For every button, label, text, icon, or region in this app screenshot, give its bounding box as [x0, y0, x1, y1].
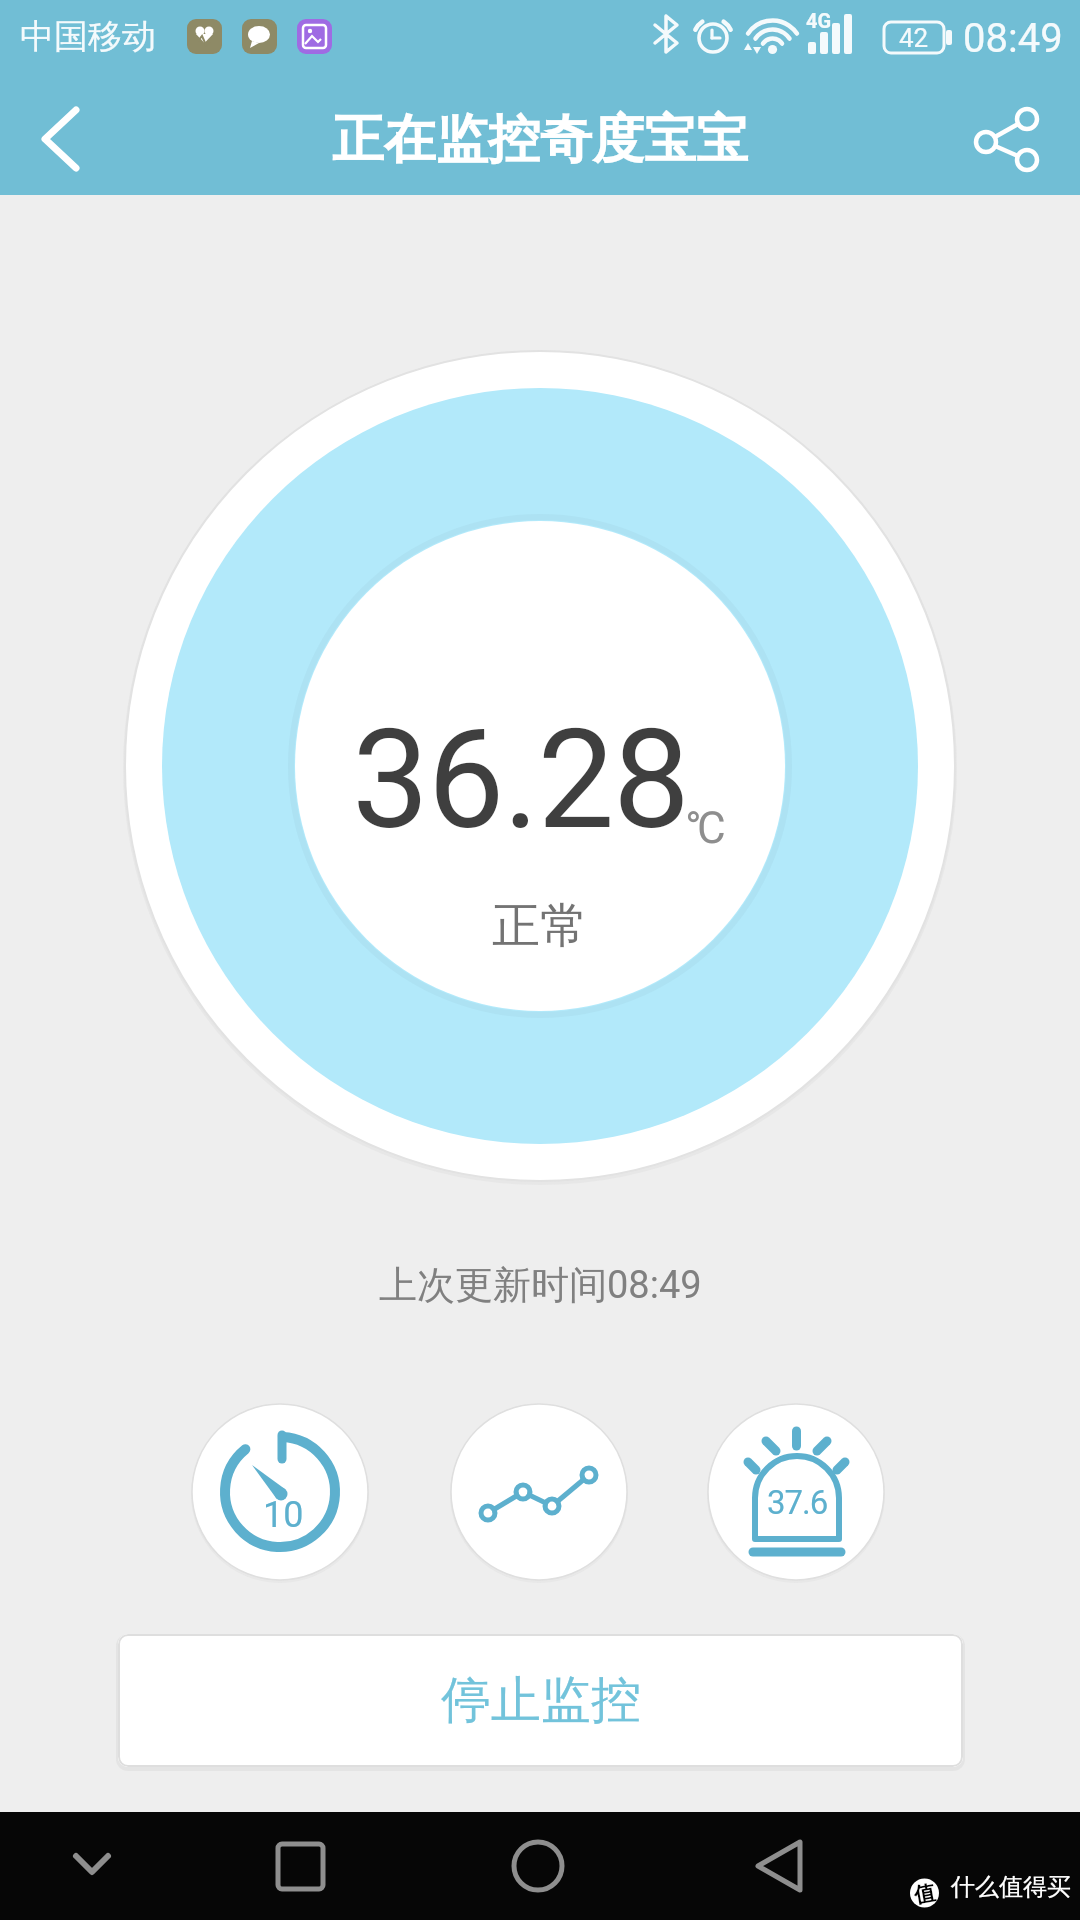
staticText: 停止监控	[441, 1669, 641, 1732]
staticText: 正在监控奇度宝宝	[332, 107, 748, 173]
staticText: 42	[899, 23, 929, 53]
staticText: 中国移动	[20, 15, 156, 58]
button[interactable]	[733, 1821, 823, 1911]
button[interactable]	[451, 1404, 627, 1580]
staticText: 上次更新时间08:49	[379, 1261, 702, 1309]
button[interactable]	[8, 80, 128, 190]
staticText: 10	[263, 1494, 304, 1536]
staticText: 值	[912, 1879, 937, 1909]
staticText: 08:49	[963, 15, 1063, 62]
button[interactable]	[708, 1404, 884, 1580]
staticText: 36.28	[352, 700, 689, 861]
button[interactable]	[192, 1404, 368, 1580]
staticText: 37.6	[767, 1483, 828, 1522]
staticText: 4G	[806, 9, 832, 32]
button[interactable]	[40, 1824, 144, 1908]
staticText: 什么值得买	[951, 1872, 1071, 1902]
button[interactable]	[493, 1821, 583, 1911]
button[interactable]: 停止监控	[118, 1634, 963, 1767]
button[interactable]	[950, 85, 1070, 190]
staticText: ℃	[687, 802, 726, 854]
staticText: 正常	[492, 896, 588, 956]
button[interactable]	[255, 1821, 345, 1911]
